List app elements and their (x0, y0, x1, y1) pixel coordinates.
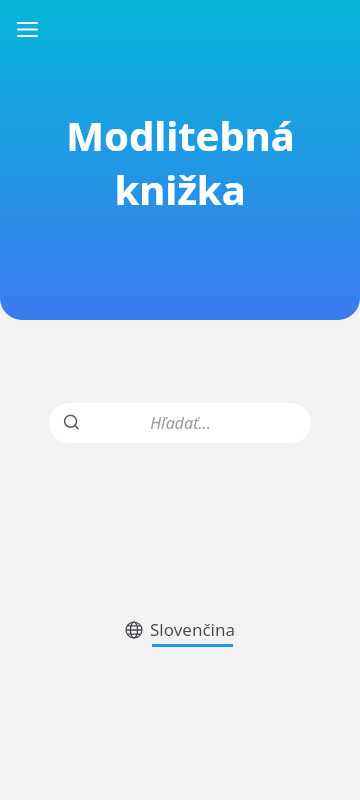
button[interactable]: Hľadať... (49, 403, 311, 443)
staticText: Modlitebná (66, 108, 295, 162)
staticText: knižka (114, 162, 246, 216)
button[interactable]: Slovenčina (121, 616, 239, 649)
staticText: Slovenčina (150, 618, 235, 641)
button[interactable]: Menu (8, 10, 46, 48)
staticText: Hľadať... (150, 412, 211, 434)
